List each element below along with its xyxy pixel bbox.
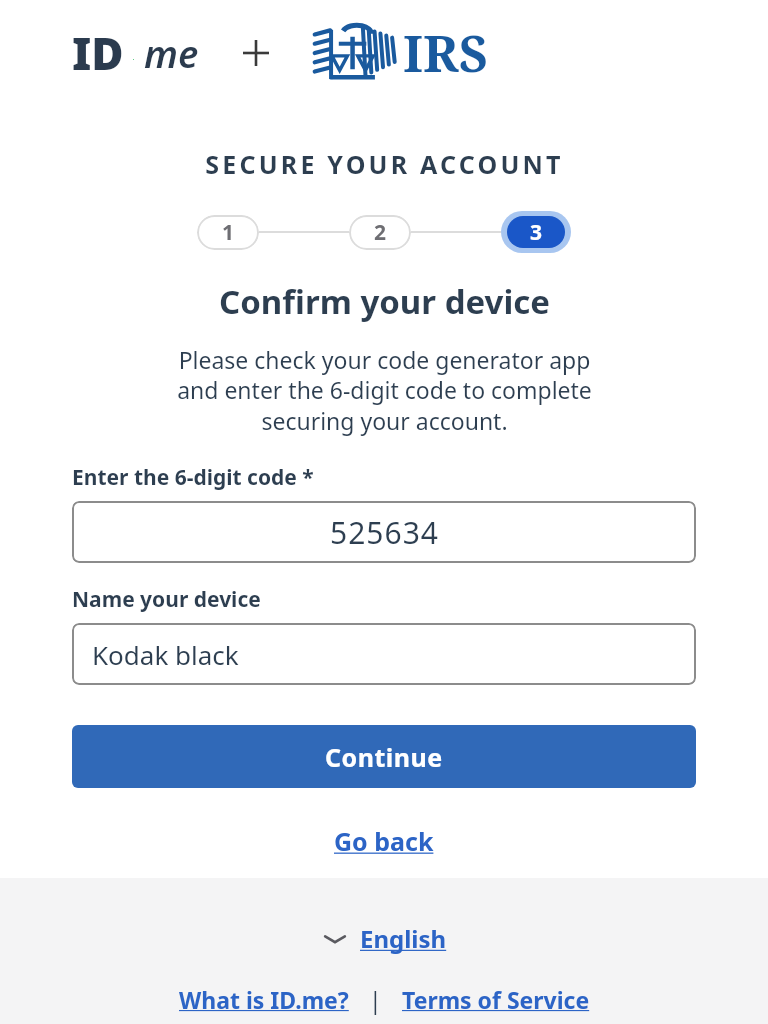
button[interactable]: Choose language bbox=[314, 918, 455, 959]
staticText: me bbox=[144, 27, 199, 79]
button[interactable]: Continue bbox=[72, 725, 696, 788]
other: Choose language bbox=[322, 931, 348, 947]
staticText: Kodak black bbox=[92, 637, 239, 672]
button[interactable]: 525634 bbox=[72, 501, 696, 563]
staticText: Enter the 6-digit code * bbox=[72, 463, 314, 492]
staticText: 2 bbox=[374, 218, 387, 247]
staticText: Please check your code generator app and… bbox=[177, 344, 592, 437]
staticText: 3 bbox=[530, 218, 543, 247]
staticText: Confirm your device bbox=[219, 279, 550, 324]
staticText: What is ID.me? bbox=[179, 984, 349, 1015]
button[interactable]: Kodak black bbox=[72, 623, 696, 685]
button[interactable]: Terms of Service bbox=[400, 981, 592, 1018]
staticText: Name your device bbox=[72, 585, 261, 614]
staticText: IRS bbox=[403, 19, 488, 87]
staticText: Continue bbox=[325, 740, 443, 774]
staticText: English bbox=[360, 922, 447, 955]
staticText: ID bbox=[72, 23, 124, 83]
staticText: | bbox=[351, 984, 400, 1015]
staticText: 525634 bbox=[330, 512, 439, 553]
staticText: 1 bbox=[222, 218, 235, 247]
staticText: Terms of Service bbox=[402, 984, 590, 1015]
button[interactable]: What is ID.me? bbox=[177, 981, 351, 1018]
staticText: Go back bbox=[334, 824, 434, 858]
staticText: SECURE YOUR ACCOUNT bbox=[205, 147, 564, 181]
button[interactable]: Go back bbox=[324, 820, 444, 862]
